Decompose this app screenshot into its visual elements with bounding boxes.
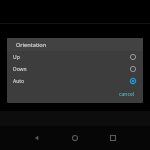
- button[interactable]: Home: [64, 127, 86, 149]
- staticText: Orientation: [16, 41, 47, 49]
- staticText: Up: [13, 54, 20, 61]
- button[interactable]: Back: [26, 127, 48, 149]
- button[interactable]: Up: [7, 51, 143, 63]
- staticText: Down: [13, 66, 27, 73]
- button[interactable]: Auto: [7, 75, 143, 87]
- button[interactable]: Recent apps: [102, 127, 124, 149]
- staticText: cancel: [119, 91, 135, 98]
- button[interactable]: Down: [7, 63, 143, 75]
- staticText: Auto: [13, 78, 25, 85]
- button[interactable]: cancel: [116, 89, 138, 100]
